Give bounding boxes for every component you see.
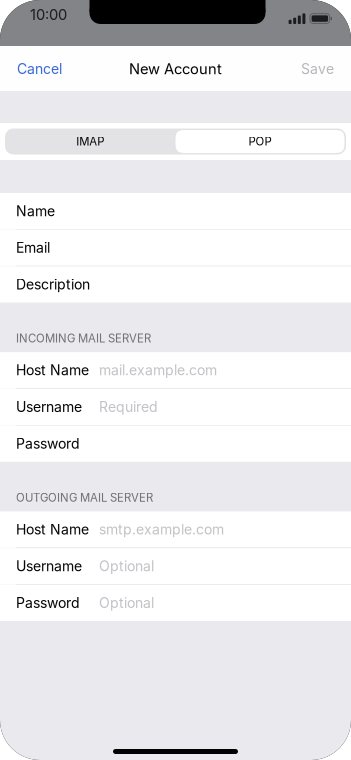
staticText: Save bbox=[301, 60, 334, 77]
staticText: POP bbox=[248, 135, 271, 148]
staticText: Email bbox=[16, 239, 50, 256]
staticText: Description bbox=[16, 276, 90, 293]
staticText: Required bbox=[99, 398, 158, 415]
staticText: OUTGOING MAIL SERVER bbox=[16, 491, 153, 504]
staticText: Password bbox=[16, 594, 80, 611]
staticText: Optional bbox=[99, 558, 154, 575]
staticText: 10:00 bbox=[30, 6, 67, 23]
staticText: Name bbox=[16, 203, 55, 219]
staticText: Host Name bbox=[16, 521, 89, 538]
button[interactable]: Host Name bbox=[0, 511, 351, 547]
button[interactable]: IMAP bbox=[5, 128, 175, 154]
button[interactable]: Name bbox=[0, 193, 351, 229]
button[interactable]: Email bbox=[0, 230, 351, 266]
staticText: Username bbox=[16, 558, 82, 575]
staticText: mail.example.com bbox=[99, 362, 217, 379]
button[interactable]: POP bbox=[175, 130, 344, 153]
button[interactable]: Password bbox=[0, 585, 351, 621]
staticText: smtp.example.com bbox=[99, 521, 224, 538]
button[interactable]: Username bbox=[0, 389, 351, 425]
staticText: Host Name bbox=[16, 362, 89, 379]
staticText: Cancel bbox=[17, 60, 62, 77]
button[interactable]: Password bbox=[0, 426, 351, 462]
staticText: IMAP bbox=[76, 135, 104, 148]
staticText: INCOMING MAIL SERVER bbox=[16, 331, 151, 345]
button[interactable]: Cancel bbox=[0, 46, 79, 92]
button[interactable]: Save bbox=[284, 46, 351, 92]
staticText: New Account bbox=[129, 60, 222, 78]
staticText: Password bbox=[16, 435, 80, 452]
button[interactable]: Username bbox=[0, 548, 351, 584]
staticText: Optional bbox=[99, 594, 154, 611]
button[interactable]: Description bbox=[0, 266, 351, 302]
button[interactable]: Host Name bbox=[0, 352, 351, 388]
staticText: Username bbox=[16, 398, 82, 415]
